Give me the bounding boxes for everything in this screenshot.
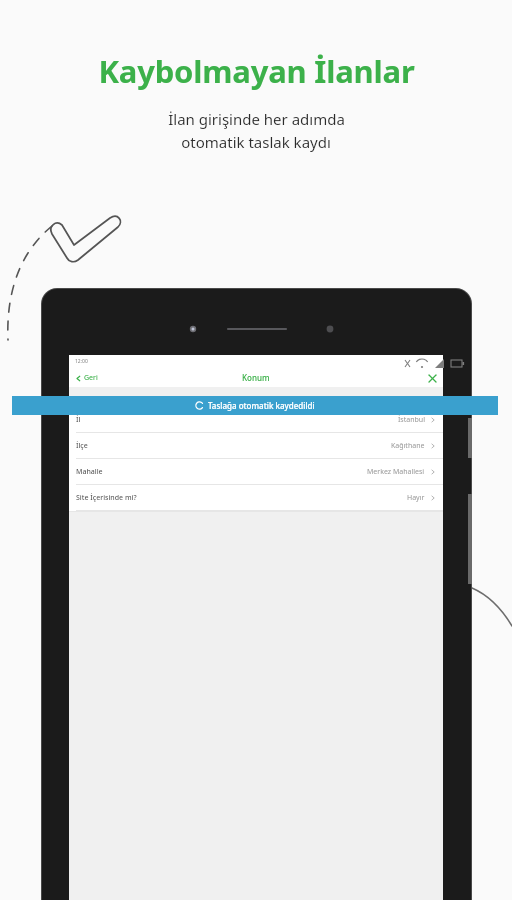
staticText: İl bbox=[76, 415, 81, 425]
staticText: otomatik taslak kaydı bbox=[181, 132, 331, 152]
staticText: Taslağa otomatik kaydedildi bbox=[208, 400, 315, 411]
staticText: 12:00 bbox=[75, 358, 88, 365]
button[interactable]: Mahalle bbox=[69, 459, 443, 484]
staticText: Mahalle bbox=[76, 467, 103, 477]
button[interactable]: İl bbox=[69, 407, 443, 432]
staticText: Geri bbox=[84, 373, 98, 383]
staticText: İlçe bbox=[76, 441, 88, 451]
staticText: İstanbul bbox=[398, 415, 425, 425]
staticText: Hayır bbox=[407, 493, 425, 503]
button[interactable]: Geri bbox=[75, 373, 98, 383]
button[interactable]: Taslağa otomatik kaydedildi bbox=[12, 396, 498, 415]
staticText: Site İçerisinde mi? bbox=[76, 493, 137, 503]
staticText: Merkez Mahallesi bbox=[367, 467, 425, 477]
staticText: Kaybolmayan İlanlar bbox=[98, 50, 415, 92]
button[interactable]: İlçe bbox=[69, 433, 443, 458]
staticText: Kağıthane bbox=[391, 441, 425, 451]
staticText: İlan girişinde her adımda bbox=[168, 109, 345, 129]
button[interactable]: Kapat bbox=[427, 373, 437, 383]
staticText: Konum bbox=[242, 372, 270, 383]
button[interactable]: Site İçerisinde mi? bbox=[69, 485, 443, 510]
